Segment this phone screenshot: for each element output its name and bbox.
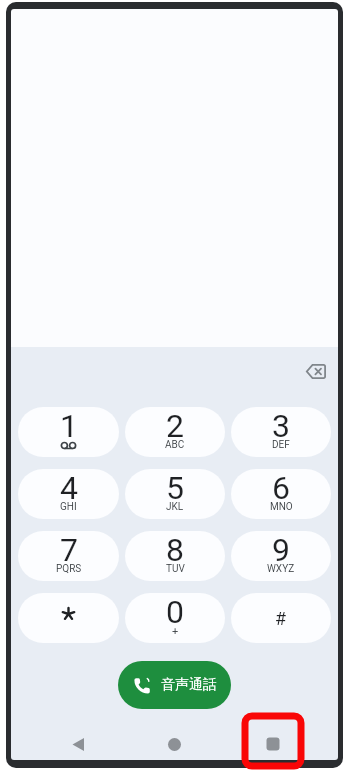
button[interactable]: 9 — [231, 531, 331, 581]
staticText: 9 — [272, 531, 290, 565]
button[interactable] — [266, 737, 280, 751]
button[interactable] — [18, 593, 119, 643]
staticText: 6 — [272, 469, 290, 503]
button[interactable]: 0 — [125, 593, 225, 643]
button[interactable]: 1 — [18, 407, 119, 457]
staticText: 1 — [60, 407, 78, 441]
staticText: TUV — [166, 563, 185, 575]
button[interactable]: 4 — [18, 469, 119, 519]
button[interactable] — [306, 364, 326, 379]
button[interactable]: 2 — [125, 407, 225, 457]
staticText: ABC — [165, 439, 185, 451]
staticText: 4 — [60, 469, 78, 503]
staticText: GHI — [60, 501, 77, 513]
staticText: # — [275, 608, 287, 629]
staticText: PQRS — [56, 563, 82, 575]
staticText: DEF — [272, 439, 290, 451]
button[interactable]: 3 — [231, 407, 331, 457]
staticText: WXYZ — [267, 563, 295, 575]
button[interactable]: 8 — [125, 531, 225, 581]
staticText: 2 — [166, 407, 184, 441]
staticText: 8 — [166, 531, 184, 565]
button[interactable]: 音声通話 — [118, 661, 231, 709]
staticText: 音声通話 — [161, 676, 217, 694]
staticText: 7 — [60, 531, 78, 565]
staticText: MNO — [270, 501, 293, 513]
button[interactable]: # — [231, 593, 331, 643]
button[interactable] — [72, 738, 84, 751]
staticText: 0 — [166, 593, 184, 627]
staticText: + — [172, 625, 179, 638]
button[interactable]: 7 — [18, 531, 119, 581]
button[interactable]: 6 — [231, 469, 331, 519]
button[interactable]: 5 — [125, 469, 225, 519]
staticText: 5 — [166, 469, 184, 503]
staticText: 3 — [272, 407, 290, 441]
staticText: JKL — [166, 501, 184, 513]
button[interactable] — [168, 738, 181, 751]
